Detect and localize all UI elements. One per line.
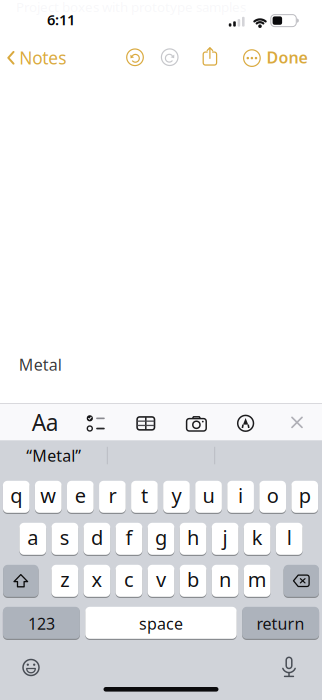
button[interactable]: Format (32, 407, 59, 437)
button[interactable]: Markup (237, 415, 254, 432)
staticText: Done (266, 47, 307, 68)
button[interactable]: Done (266, 47, 307, 68)
staticText: l (287, 524, 292, 551)
button[interactable]: n (212, 565, 238, 597)
staticText: z (60, 566, 69, 593)
staticText: b (187, 566, 199, 593)
button[interactable]: Checklist (86, 415, 105, 432)
button[interactable]: a (19, 523, 46, 555)
button[interactable]: r (99, 481, 126, 513)
staticText: Notes (19, 46, 66, 69)
button[interactable]: d (83, 523, 110, 555)
button[interactable]: Notes (7, 46, 66, 69)
staticText: k (252, 524, 263, 551)
button[interactable]: e (67, 481, 94, 513)
button[interactable]: b (180, 565, 206, 597)
staticText: m (248, 566, 267, 593)
button[interactable]: g (148, 523, 174, 555)
staticText: Metal (19, 354, 62, 375)
button[interactable]: space (85, 607, 237, 639)
button[interactable]: Delete (284, 565, 319, 597)
staticText: a (27, 524, 38, 551)
staticText: return (257, 613, 305, 634)
staticText: t (141, 482, 148, 509)
staticText: “Metal” (26, 445, 81, 466)
button[interactable]: Dismiss keyboard (291, 416, 303, 428)
staticText: j (223, 524, 228, 551)
button[interactable]: m (244, 565, 270, 597)
staticText: space (139, 613, 183, 634)
button[interactable]: 123 (3, 607, 80, 639)
staticText: e (75, 482, 86, 509)
button[interactable]: i (227, 481, 254, 513)
button[interactable]: o (259, 481, 286, 513)
staticText: i (238, 482, 243, 509)
staticText: h (187, 524, 199, 551)
button[interactable]: k (244, 523, 270, 555)
button[interactable]: “Metal” (4, 441, 104, 469)
button[interactable]: return (242, 607, 319, 639)
button[interactable]: f (116, 523, 142, 555)
staticText: s (60, 524, 70, 551)
staticText: 123 (28, 613, 55, 634)
button[interactable]: j (212, 523, 238, 555)
button[interactable]: s (51, 523, 78, 555)
button[interactable]: p (291, 481, 318, 513)
button[interactable]: v (148, 565, 174, 597)
button[interactable]: z (51, 565, 78, 597)
button[interactable]: Share (201, 47, 218, 66)
staticText: c (124, 566, 134, 593)
button[interactable]: Table (136, 416, 155, 431)
staticText: o (267, 482, 279, 509)
staticText: Aa (32, 407, 59, 437)
staticText: q (10, 482, 22, 509)
button[interactable]: c (116, 565, 142, 597)
staticText: Project boxes with prototype samples (16, 0, 246, 16)
button[interactable]: y (163, 481, 190, 513)
button[interactable]: x (83, 565, 110, 597)
button[interactable]: More (243, 49, 261, 67)
button[interactable]: Redo (161, 48, 179, 66)
staticText: 6:11 (47, 10, 75, 29)
button[interactable]: t (131, 481, 158, 513)
button[interactable]: h (180, 523, 206, 555)
button[interactable]: Camera (186, 416, 207, 431)
button[interactable]: Shift (3, 565, 38, 597)
staticText: g (155, 524, 167, 551)
staticText: r (108, 482, 116, 509)
staticText: f (125, 524, 132, 551)
button[interactable]: u (195, 481, 222, 513)
button[interactable]: w (35, 481, 62, 513)
staticText: v (156, 566, 166, 593)
staticText: n (219, 566, 231, 593)
button[interactable]: l (276, 523, 302, 555)
staticText: y (171, 482, 181, 509)
button[interactable]: Dictation (281, 656, 297, 679)
staticText: p (299, 482, 311, 509)
button[interactable]: q (3, 481, 30, 513)
button[interactable]: Undo (126, 48, 144, 66)
staticText: w (40, 482, 56, 509)
staticText: d (91, 524, 103, 551)
staticText: u (202, 482, 214, 509)
button[interactable]: Emoji (21, 657, 41, 677)
staticText: x (91, 566, 102, 593)
